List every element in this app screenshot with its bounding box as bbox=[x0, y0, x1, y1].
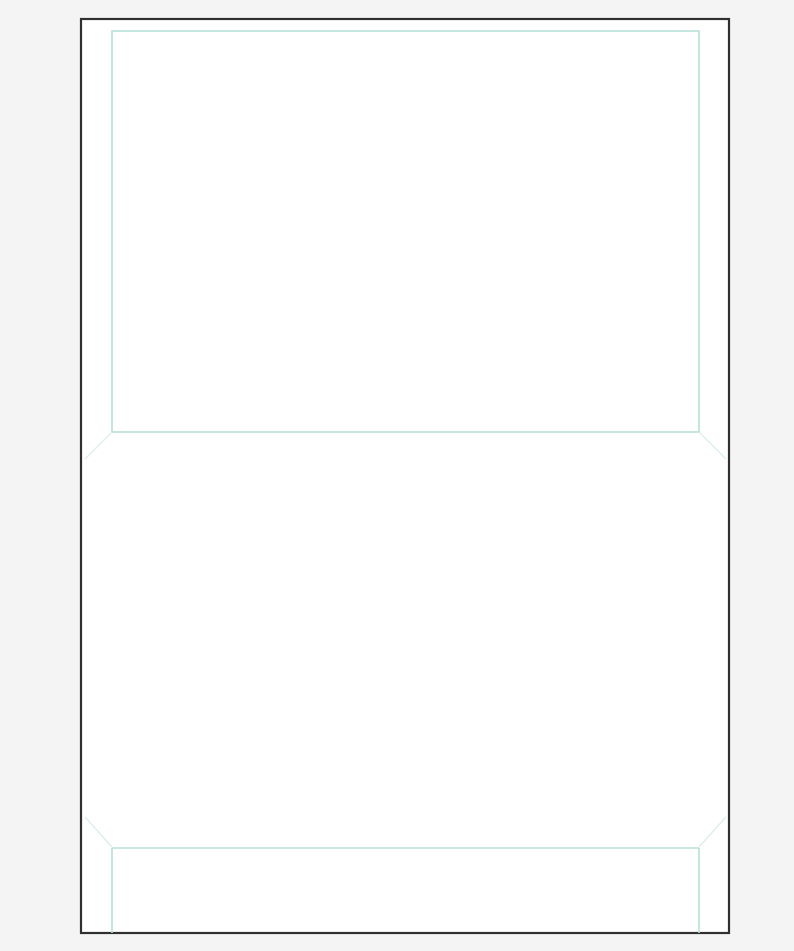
button[interactable] bbox=[0, 0, 794, 951]
